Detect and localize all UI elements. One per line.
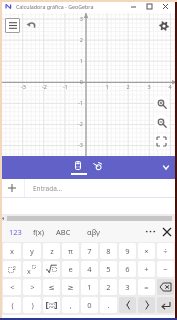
button[interactable]: XP [23, 261, 41, 277]
staticText: 3 [125, 282, 130, 292]
staticText: ) [31, 300, 34, 310]
button[interactable]: SQ [3, 261, 21, 277]
staticText: 6 [125, 264, 130, 274]
staticText: z [50, 246, 54, 256]
staticText: -3 [21, 83, 26, 90]
button[interactable]: 6 [119, 261, 136, 277]
staticText: f(x) [33, 227, 45, 237]
staticText: 1 [105, 83, 109, 90]
staticText: ≤ [48, 283, 55, 292]
button[interactable]: x [3, 243, 21, 259]
staticText: 4 [168, 83, 172, 90]
button[interactable]: < [3, 279, 21, 295]
staticText: 2 [13, 265, 16, 272]
button[interactable]: + [138, 261, 155, 277]
button[interactable]: z [43, 243, 60, 259]
button[interactable]: y [23, 243, 41, 259]
button[interactable]: 0 [81, 297, 98, 313]
staticText: 0 [79, 78, 83, 85]
staticText: Entrada... [33, 184, 63, 193]
button[interactable]: 9 [119, 243, 136, 259]
button[interactable]: = [138, 279, 155, 295]
button[interactable]: 3 [119, 279, 136, 295]
button[interactable]: BK [157, 279, 174, 295]
button[interactable]: × [138, 243, 155, 259]
button[interactable]: Tools view [88, 156, 106, 179]
button[interactable]: f(x) [33, 227, 45, 237]
staticText: y [30, 246, 34, 256]
button[interactable]: 5 [100, 261, 117, 277]
button[interactable]: ) [23, 297, 41, 313]
staticText: 3 [79, 15, 83, 22]
staticText: > [30, 282, 35, 292]
staticText: ÷ [163, 246, 168, 256]
button[interactable]: , [62, 297, 79, 313]
button[interactable]: LT [119, 297, 136, 313]
button[interactable]: 1 [81, 279, 98, 295]
button[interactable]: Zoom out [154, 115, 169, 130]
staticText: + [144, 264, 149, 274]
button[interactable]: Undo [25, 19, 37, 31]
staticText: 5 [106, 264, 111, 274]
button[interactable]: Algebra view [68, 156, 90, 179]
button[interactable]: ≤ [43, 279, 60, 295]
button[interactable]: π [62, 243, 79, 259]
button[interactable]: Close [157, 0, 173, 13]
staticText: ≥ [67, 283, 74, 292]
button[interactable]: Minimize [125, 0, 141, 13]
staticText: -1 [78, 99, 83, 106]
staticText: 2 [126, 83, 130, 90]
button[interactable]: 4 [81, 261, 98, 277]
staticText: ( [11, 300, 14, 310]
button[interactable]: ABC [56, 227, 71, 237]
button[interactable]: ≥ [62, 279, 79, 295]
button[interactable]: > [23, 279, 41, 295]
staticText: αβγ [87, 227, 100, 237]
button[interactable]: Maximize [141, 0, 157, 13]
button[interactable]: Add [0, 179, 24, 197]
staticText: . [107, 300, 110, 310]
button[interactable]: Collapse panel [155, 156, 177, 179]
staticText: 7 [87, 246, 92, 256]
staticText: < [10, 282, 15, 292]
button[interactable]: . [100, 297, 117, 313]
staticText: -1 [63, 83, 68, 90]
button[interactable]: αβγ [87, 227, 100, 237]
button[interactable]: 7 [81, 243, 98, 259]
button[interactable]: Settings [158, 20, 170, 32]
button[interactable]: GT [138, 297, 155, 313]
staticText: x [27, 267, 31, 277]
button[interactable]: EN [157, 297, 174, 313]
button[interactable]: 2 [100, 279, 117, 295]
staticText: e [68, 264, 73, 274]
staticText: -2 [42, 83, 47, 90]
staticText: 1 [79, 57, 83, 64]
button[interactable]: Zoom in [154, 96, 169, 111]
staticText: x [10, 246, 14, 256]
staticText: 4 [87, 264, 92, 274]
button[interactable]: More [143, 221, 158, 242]
button[interactable]: 123 [9, 227, 22, 237]
staticText: π [68, 246, 73, 256]
button[interactable]: Fullscreen [154, 134, 169, 149]
staticText: -2 [78, 120, 83, 127]
staticText: − [163, 264, 168, 274]
staticText: 2 [79, 36, 83, 43]
staticText: -3 [78, 141, 83, 148]
button[interactable]: Close keyboard [159, 221, 174, 242]
staticText: 3 [147, 83, 151, 90]
button[interactable]: 8 [100, 243, 117, 259]
button[interactable]: − [157, 261, 174, 277]
staticText: 123 [9, 227, 22, 237]
staticText: ABC [56, 227, 71, 237]
staticText: 0 [87, 300, 92, 310]
button[interactable]: ( [3, 297, 21, 313]
staticText: , [69, 300, 72, 310]
button[interactable]: e [62, 261, 79, 277]
button[interactable]: RT [43, 261, 60, 277]
button[interactable]: ÷ [157, 243, 174, 259]
staticText: = [144, 282, 149, 292]
button[interactable]: Menu [5, 18, 20, 33]
button[interactable]: MX [43, 297, 60, 313]
staticText: 1 [87, 282, 92, 292]
